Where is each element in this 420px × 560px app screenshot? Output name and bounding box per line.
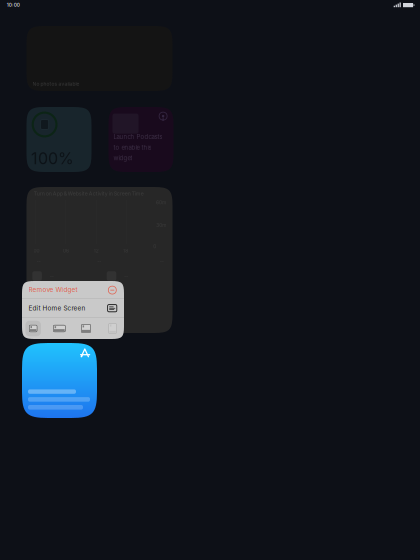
staticText: Edit Home Screen	[29, 304, 86, 312]
staticText: widget	[113, 154, 132, 162]
staticText: 06	[63, 248, 69, 254]
staticText: to enable this	[113, 144, 151, 151]
staticText: 0	[153, 244, 156, 249]
button[interactable]: Podcasts widget	[108, 107, 173, 172]
staticText: 10:00	[7, 2, 20, 8]
button[interactable]: Widget size option	[22, 319, 44, 337]
staticText: 100%	[31, 149, 74, 168]
staticText: Launch Podcasts	[113, 133, 162, 140]
staticText: 30m	[156, 222, 166, 228]
button[interactable]: Widget size option	[75, 319, 97, 337]
staticText: 18	[123, 248, 128, 254]
staticText: Turn on App & Website Activity in Screen…	[34, 190, 144, 197]
staticText: 60m	[156, 200, 166, 205]
button[interactable]: Remove Widget	[22, 281, 124, 298]
staticText: No photos available	[32, 81, 79, 87]
button[interactable]: Edit Home Screen	[22, 299, 124, 317]
button[interactable]: App Store widget	[22, 343, 97, 418]
button[interactable]: Batteries widget	[26, 107, 91, 172]
button[interactable]: Widget size option	[48, 319, 70, 337]
button[interactable]: Screen Time widget	[26, 187, 172, 333]
button[interactable]: Widget size option	[101, 319, 123, 337]
staticText: Remove Widget	[29, 286, 78, 294]
